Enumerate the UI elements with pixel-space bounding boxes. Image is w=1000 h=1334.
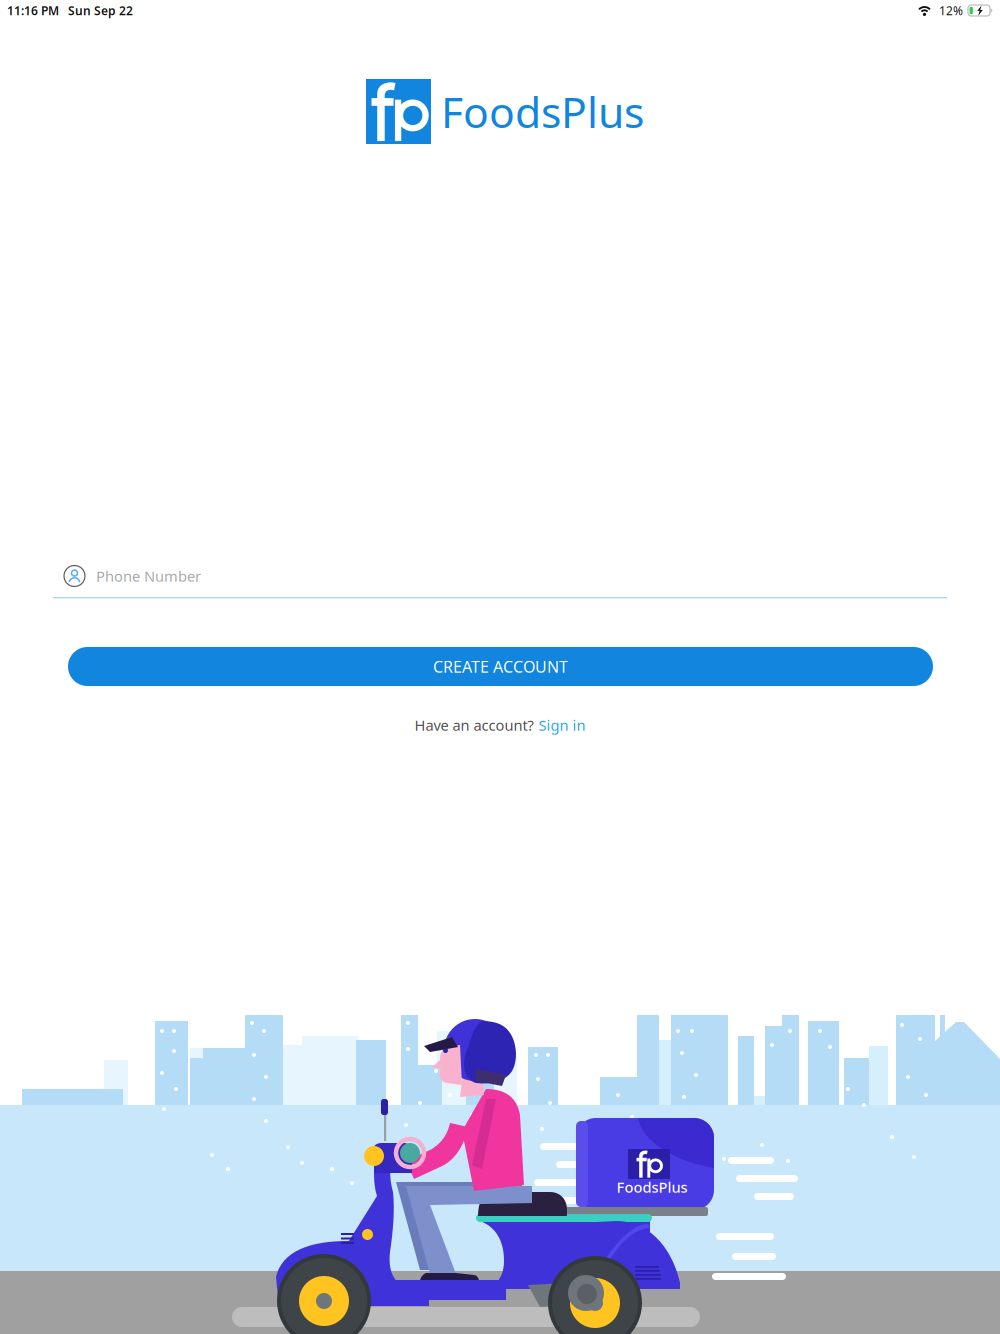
- button[interactable]: Have an account?: [400, 715, 600, 735]
- staticText: 11:16 PM: [7, 2, 59, 18]
- button[interactable]: CREATE ACCOUNT: [68, 647, 933, 686]
- staticText: CREATE ACCOUNT: [433, 656, 568, 677]
- staticText: Sun Sep 22: [68, 2, 133, 18]
- staticText: 12%: [939, 2, 963, 18]
- staticText: Have an account?: [414, 715, 533, 735]
- staticText: Phone Number: [96, 566, 201, 586]
- staticText: Sign in: [538, 715, 585, 735]
- staticText: FoodsPlus: [441, 83, 644, 140]
- staticText: FoodsPlus: [616, 1177, 687, 1197]
